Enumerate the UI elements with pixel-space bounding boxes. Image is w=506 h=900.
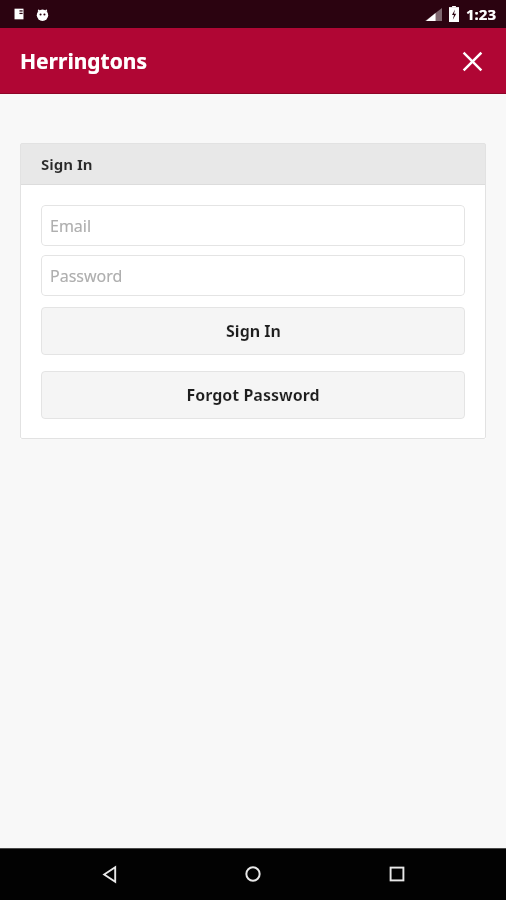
button[interactable]: Sign In	[41, 307, 465, 355]
button[interactable]: Back	[74, 848, 144, 900]
staticText: Email	[50, 215, 92, 237]
staticText: Sign In	[226, 320, 281, 342]
button[interactable]: Password	[41, 255, 465, 296]
button[interactable]: Recent apps	[362, 848, 432, 900]
staticText: Forgot Password	[186, 384, 320, 406]
staticText: 1:23	[466, 4, 496, 24]
staticText: Herringtons	[20, 47, 148, 76]
button[interactable]: Email	[41, 205, 465, 246]
button[interactable]: Close	[448, 37, 496, 85]
staticText: Sign In	[41, 154, 93, 174]
button[interactable]: Forgot Password	[41, 371, 465, 419]
staticText: Password	[50, 265, 123, 287]
button[interactable]: Home	[218, 848, 288, 900]
